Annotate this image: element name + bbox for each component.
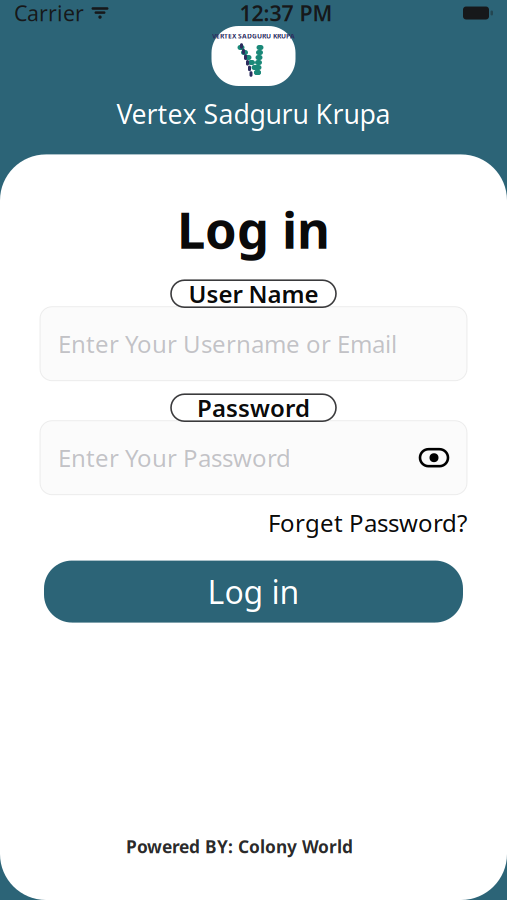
- staticText: Vertex Sadguru Krupa: [116, 96, 390, 131]
- staticText: Carrier: [14, 0, 84, 27]
- staticText: Powered BY: Colony World: [126, 835, 353, 858]
- staticText: Log in: [177, 195, 330, 263]
- staticText: Password: [197, 392, 310, 424]
- staticText: Log in: [207, 570, 299, 613]
- staticText: VERTEX SADGURU KRUPA: [212, 32, 295, 40]
- staticText: 12:37 PM: [239, 0, 332, 27]
- staticText: Forget Password?: [268, 507, 467, 539]
- button[interactable]: Forget Password?: [268, 507, 467, 539]
- staticText: User Name: [188, 278, 318, 310]
- staticText: Enter Your Password: [58, 442, 291, 474]
- staticText: Enter Your Username or Email: [58, 328, 397, 360]
- button[interactable]: Show password: [419, 448, 449, 468]
- button[interactable]: Log in: [44, 561, 463, 623]
